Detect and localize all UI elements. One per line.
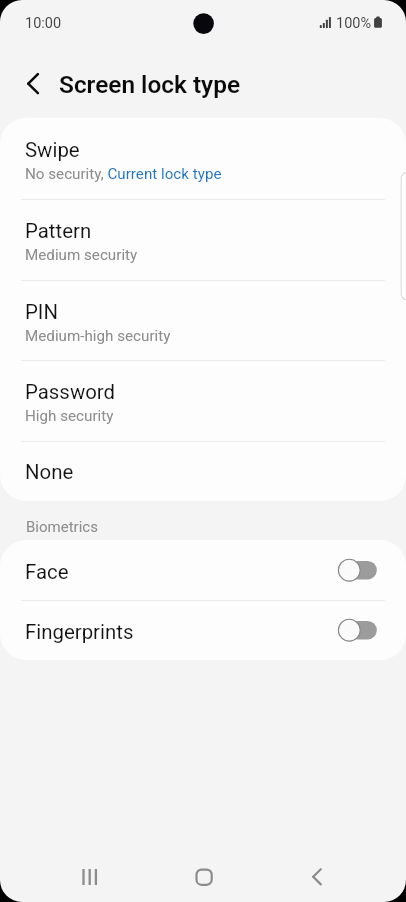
button[interactable]: Fingerprints (0, 600, 406, 660)
staticText: No security, Current lock type (25, 165, 222, 183)
staticText: Pattern (25, 219, 92, 243)
button[interactable]: Password (0, 360, 406, 441)
staticText: Medium-high security (25, 327, 171, 345)
staticText: Screen lock type (59, 70, 241, 99)
staticText: None (25, 460, 74, 484)
staticText: Fingerprints (25, 620, 134, 644)
staticText: Face (25, 560, 69, 584)
staticText: High security (25, 407, 114, 425)
staticText: PIN (25, 300, 58, 324)
button[interactable]: Home (177, 849, 229, 901)
button[interactable]: Back (291, 849, 343, 901)
button[interactable]: None (0, 441, 406, 500)
button[interactable]: Recents (58, 849, 110, 901)
staticText: Swipe (25, 138, 80, 162)
staticText: 10:00 (25, 15, 62, 32)
button[interactable]: Back (11, 62, 55, 106)
staticText: Medium security (25, 246, 138, 264)
staticText: Password (25, 380, 116, 404)
button[interactable]: Face (0, 540, 406, 600)
button[interactable]: Swipe (0, 118, 406, 199)
button[interactable]: Pattern (0, 199, 406, 280)
staticText: Biometrics (26, 518, 98, 536)
staticText: 100% (336, 15, 372, 32)
button[interactable]: PIN (0, 280, 406, 361)
